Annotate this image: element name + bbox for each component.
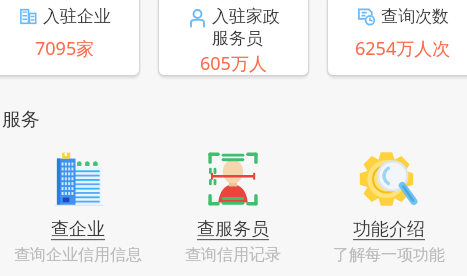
staticText: 了解每一项功能 bbox=[333, 245, 445, 265]
button[interactable]: 查询次数 bbox=[328, 0, 467, 75]
staticText: 6254万人次 bbox=[355, 36, 451, 61]
staticText: 入驻企业 bbox=[43, 6, 111, 27]
staticText: 查服务员 bbox=[197, 218, 269, 241]
staticText: 7095家 bbox=[35, 36, 95, 61]
staticText: 入驻家政 服务员 bbox=[212, 6, 280, 49]
staticText: 查询次数 bbox=[381, 6, 449, 27]
button[interactable]: 入驻家政 服务员 bbox=[159, 0, 308, 75]
button[interactable]: 查服务员 bbox=[155, 148, 311, 265]
staticText: 查询信用记录 bbox=[185, 245, 281, 265]
button[interactable]: 入驻企业 bbox=[0, 0, 139, 75]
staticText: 605万人 bbox=[200, 51, 267, 75]
button[interactable]: 查企业 bbox=[0, 148, 155, 265]
button[interactable]: 功能介绍 bbox=[311, 148, 467, 265]
staticText: 功能介绍 bbox=[353, 218, 425, 241]
staticText: 查企业 bbox=[51, 218, 105, 241]
staticText: 查询企业信用信息 bbox=[14, 245, 142, 265]
staticText: 服务 bbox=[2, 108, 40, 132]
